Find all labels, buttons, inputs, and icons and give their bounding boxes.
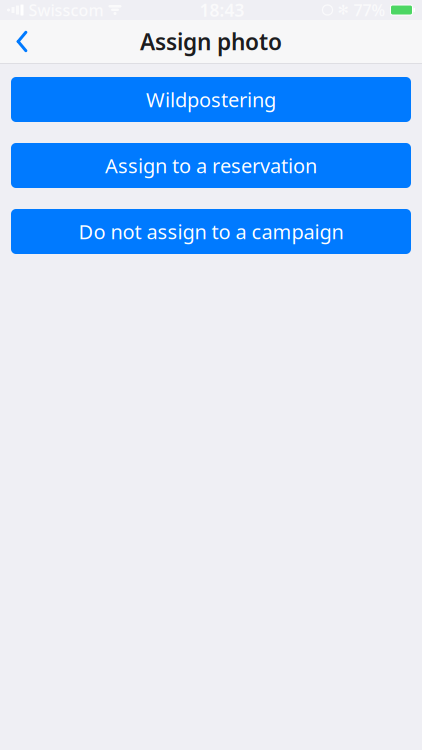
button[interactable]: Back — [0, 20, 44, 63]
staticText: 77% — [353, 0, 385, 21]
staticText: Wildpostering — [146, 86, 276, 113]
staticText: Do not assign to a campaign — [78, 218, 343, 245]
staticText: Swisscom — [28, 0, 103, 21]
staticText: Assign photo — [140, 26, 282, 56]
button[interactable]: Wildpostering — [11, 77, 411, 122]
staticText: ✻ — [337, 2, 348, 17]
button[interactable]: Assign to a reservation — [11, 143, 411, 188]
button[interactable]: Do not assign to a campaign — [11, 209, 411, 254]
staticText: 18:43 — [199, 0, 244, 21]
staticText: Assign to a reservation — [105, 152, 317, 179]
